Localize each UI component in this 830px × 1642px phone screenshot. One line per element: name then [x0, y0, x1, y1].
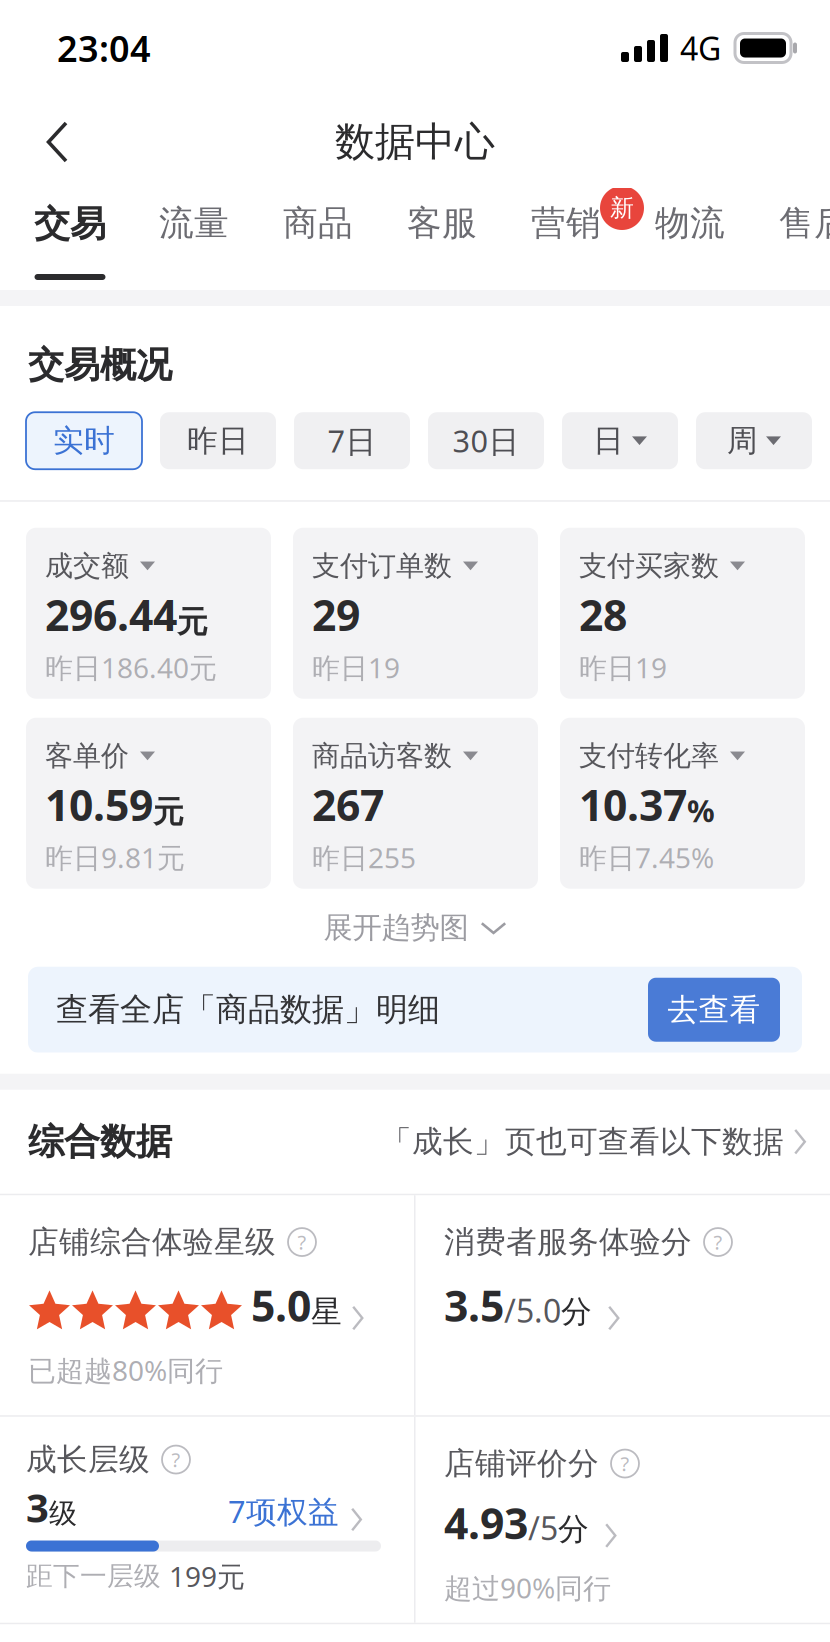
staticText: 物流 [655, 202, 725, 245]
staticText: 昨日19 [579, 649, 667, 686]
button[interactable]: 店铺评价分 [414, 1417, 830, 1623]
staticText: ? [620, 1450, 629, 1477]
staticText: ? [171, 1446, 180, 1473]
button[interactable]: 支付转化率 [560, 718, 805, 889]
staticText: 日 [593, 422, 624, 460]
staticText: 星 [311, 1293, 342, 1331]
button[interactable]: 商品访客数 [293, 718, 538, 889]
staticText: % [687, 790, 715, 831]
button[interactable]: 展开趋势图 [0, 889, 830, 967]
button[interactable]: 成交额 [26, 528, 271, 699]
staticText: 分 [558, 1510, 589, 1548]
staticText: 199元 [169, 1557, 245, 1595]
button[interactable]: 7日 [294, 412, 410, 469]
staticText: 客单价 [45, 739, 129, 773]
staticText: 元 [177, 603, 208, 641]
staticText: 「成长」页也可查看以下数据 [381, 1123, 784, 1161]
staticText: 267 [312, 776, 384, 833]
button[interactable]: 商品 [256, 188, 380, 290]
staticText: 支付转化率 [579, 739, 719, 773]
staticText: 消费者服务体验分 [444, 1223, 692, 1261]
button[interactable]: 客服 [380, 188, 504, 290]
staticText: 已超越80%同行 [28, 1351, 223, 1389]
button[interactable]: 返回 [0, 96, 114, 188]
staticText: 综合数据 [28, 1120, 172, 1164]
staticText: 距下一层级 [26, 1560, 161, 1592]
staticText: 7日 [327, 420, 376, 461]
staticText: 昨日 [187, 422, 249, 460]
staticText: 昨日7.45% [579, 839, 714, 876]
button[interactable]: 昨日 [160, 412, 276, 469]
button[interactable]: 日 [562, 412, 678, 469]
staticText: 级 [49, 1496, 77, 1530]
staticText: /5.0 [504, 1289, 561, 1332]
button[interactable]: 支付买家数 [560, 528, 805, 699]
staticText: 28 [579, 586, 627, 643]
staticText: 30日 [452, 420, 519, 461]
staticText: 分 [561, 1293, 592, 1331]
staticText: 支付买家数 [579, 549, 719, 583]
staticText: 29 [312, 586, 360, 643]
staticText: 营销 [531, 202, 601, 245]
staticText: /5 [528, 1507, 558, 1549]
button[interactable]: 流量 [132, 188, 256, 290]
button[interactable]: 实时 [26, 412, 142, 469]
button[interactable]: 店铺综合体验星级 [0, 1195, 414, 1415]
staticText: ? [297, 1229, 306, 1255]
button[interactable]: 营销 [504, 188, 628, 290]
staticText: 5.0 [251, 1277, 311, 1334]
staticText: 昨日186.40元 [45, 649, 217, 686]
button[interactable]: 客单价 [26, 718, 271, 889]
staticText: 商品访客数 [312, 739, 452, 773]
staticText: 昨日9.81元 [45, 839, 185, 876]
staticText: 成交额 [45, 549, 129, 583]
staticText: 流量 [159, 202, 229, 245]
button[interactable]: 售后 [752, 188, 830, 290]
staticText: 7项权益 [228, 1491, 339, 1531]
staticText: 商品 [283, 202, 353, 245]
staticText: 店铺评价分 [444, 1445, 599, 1482]
staticText: 展开趋势图 [323, 910, 468, 946]
staticText: 3 [26, 1480, 49, 1533]
button[interactable]: 周 [696, 412, 812, 469]
staticText: 3.5 [444, 1277, 504, 1334]
staticText: 店铺综合体验星级 [28, 1223, 276, 1261]
button[interactable]: 「成长」页也可查看以下数据 [381, 1123, 806, 1161]
button[interactable]: 成长层级 [0, 1417, 414, 1623]
button[interactable]: 物流 [628, 188, 752, 290]
staticText: 4.93 [444, 1494, 528, 1551]
staticText: 实时 [53, 422, 115, 460]
staticText: 去查看 [667, 991, 760, 1029]
staticText: 元 [153, 793, 184, 831]
staticText: 支付订单数 [312, 549, 452, 583]
staticText: 296.44 [45, 586, 177, 643]
button[interactable]: 消费者服务体验分 [414, 1195, 830, 1415]
staticText: 交易 [34, 202, 106, 246]
staticText: 查看全店「商品数据」明细 [56, 990, 440, 1029]
button[interactable]: 查看全店「商品数据」明细 [28, 967, 802, 1053]
staticText: 超过90%同行 [444, 1569, 611, 1606]
staticText: 新 [610, 193, 634, 223]
staticText: 客服 [407, 202, 477, 245]
staticText: 10.59 [45, 776, 153, 833]
staticText: 昨日255 [312, 839, 416, 876]
staticText: ? [713, 1229, 722, 1255]
button[interactable]: 交易 [8, 188, 132, 290]
staticText: 23:04 [57, 24, 151, 72]
staticText: 10.37 [579, 776, 687, 833]
button[interactable]: 支付订单数 [293, 528, 538, 699]
staticText: 成长层级 [26, 1441, 150, 1478]
staticText: 数据中心 [335, 117, 495, 166]
staticText: 周 [727, 422, 758, 460]
staticText: 昨日19 [312, 649, 400, 686]
staticText: 4G [680, 27, 721, 69]
button[interactable]: 30日 [428, 412, 544, 469]
staticText: 售后 [779, 202, 830, 245]
staticText: 交易概况 [28, 343, 172, 387]
